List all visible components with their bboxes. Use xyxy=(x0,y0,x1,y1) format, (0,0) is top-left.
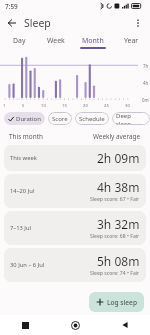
staticText: 25 xyxy=(104,103,109,109)
button[interactable]: Back xyxy=(100,315,150,335)
button[interactable]: 14–20 Jul xyxy=(4,174,146,208)
staticText: Week xyxy=(47,36,65,45)
staticText: Score xyxy=(52,115,68,123)
button[interactable]: Deep sleep xyxy=(112,112,150,125)
staticText: Schedule xyxy=(79,115,105,123)
staticText: 15 xyxy=(62,103,67,109)
staticText: Sleep score: 67 • Fair xyxy=(90,196,140,203)
staticText: 5h 08m xyxy=(97,253,140,269)
button[interactable]: Duration xyxy=(4,112,45,125)
button[interactable]: Week xyxy=(37,34,74,51)
staticText: 10 xyxy=(41,103,46,109)
staticText: 1 xyxy=(3,103,6,109)
staticText: Deep sleep xyxy=(116,112,146,125)
staticText: 4h 38m xyxy=(97,179,140,195)
staticText: Sleep score: 68 • Fair xyxy=(90,233,140,240)
staticText: Sleep xyxy=(24,16,51,30)
button[interactable]: Recent apps xyxy=(0,315,50,335)
staticText: Log sleep xyxy=(107,298,137,307)
button[interactable]: Home xyxy=(50,315,100,335)
button[interactable]: Back xyxy=(3,14,21,32)
button[interactable]: Schedule xyxy=(75,112,109,125)
button[interactable]: Score xyxy=(48,112,72,125)
staticText: Sleep score: 74 • Fair xyxy=(90,270,140,277)
staticText: 14–20 Jul xyxy=(10,187,35,195)
button[interactable]: Day xyxy=(0,34,37,51)
button[interactable]: This week xyxy=(4,145,146,171)
staticText: Year xyxy=(124,36,139,45)
button[interactable]: Log sleep xyxy=(89,292,144,312)
staticText: 20 xyxy=(83,103,88,109)
staticText: This month xyxy=(9,132,43,141)
staticText: 30 Jun – 6 Jul xyxy=(10,261,45,269)
button[interactable]: More options xyxy=(129,14,147,32)
button[interactable]: Year xyxy=(112,34,150,51)
staticText: 5 xyxy=(22,103,25,109)
staticText: 2h 09m xyxy=(97,150,140,166)
staticText: This week xyxy=(10,154,37,162)
button[interactable]: Month xyxy=(74,34,112,51)
button[interactable]: 7–13 Jul xyxy=(4,211,146,245)
staticText: 7:59 xyxy=(5,2,18,11)
staticText: Duration xyxy=(16,115,41,123)
staticText: 30 xyxy=(125,103,130,109)
staticText: 4h xyxy=(143,80,149,86)
staticText: 0m xyxy=(142,97,149,103)
staticText: 3h 32m xyxy=(97,216,140,232)
staticText: Day xyxy=(13,36,26,45)
staticText: Weekly average xyxy=(93,132,141,141)
staticText: 7h xyxy=(143,63,149,69)
staticText: Month xyxy=(82,36,104,45)
staticText: 7–13 Jul xyxy=(10,224,32,232)
button[interactable]: 30 Jun – 6 Jul xyxy=(4,248,146,282)
